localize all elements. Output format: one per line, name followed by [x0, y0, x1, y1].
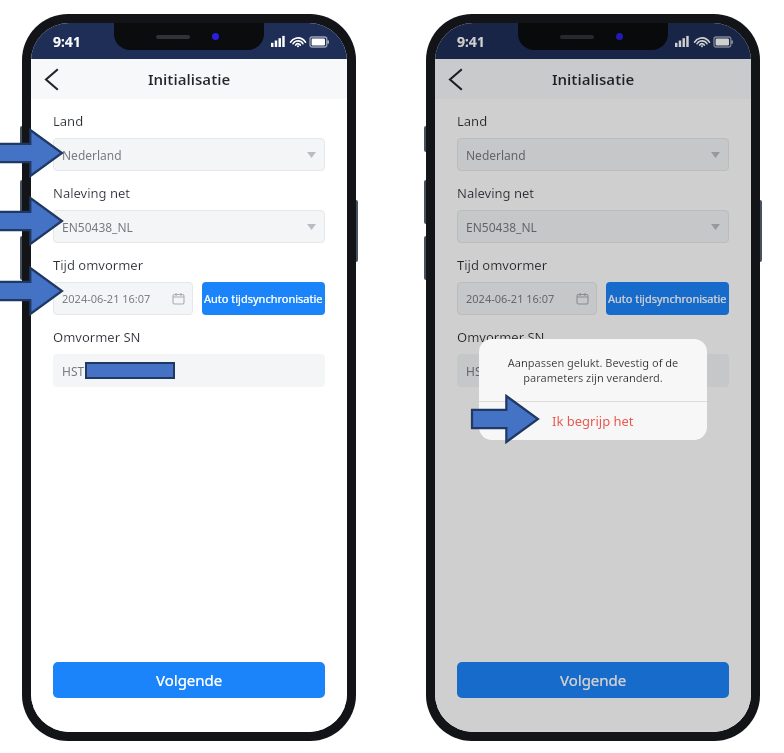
staticText: Nederland	[466, 147, 526, 163]
staticText: HST	[466, 363, 489, 379]
staticText: Volgende	[560, 670, 627, 690]
staticText: EN50438_NL	[466, 219, 537, 235]
button[interactable]: 2024-06-21 16:07	[457, 282, 597, 315]
button[interactable]: Nederland	[457, 138, 729, 171]
staticText: Omvormer SN	[53, 328, 141, 346]
staticText: Tijd omvormer	[457, 256, 548, 274]
staticText: Initialisatie	[552, 69, 635, 89]
staticText: Aanpassen gelukt. Bevestig of de paramet…	[495, 355, 691, 385]
staticText: Initialisatie	[148, 69, 231, 89]
staticText: Land	[53, 112, 84, 130]
button[interactable]: Back	[31, 59, 71, 99]
staticText: 2024-06-21 16:07	[466, 291, 555, 306]
staticText: 9:41	[53, 32, 81, 51]
button[interactable]: Ik begrijp het	[479, 402, 707, 440]
staticText: Land	[457, 112, 488, 130]
staticText: 2024-06-21 16:07	[62, 291, 151, 306]
button[interactable]: EN50438_NL	[53, 210, 325, 243]
staticText: Volgende	[156, 670, 223, 690]
button[interactable]: Volgende	[457, 662, 729, 698]
staticText: EN50438_NL	[62, 219, 133, 235]
staticText: Tijd omvormer	[53, 256, 144, 274]
staticText: Omvormer SN	[457, 328, 545, 346]
button[interactable]: Volgende	[53, 662, 325, 698]
staticText: Naleving net	[457, 184, 535, 202]
staticText: Naleving net	[53, 184, 131, 202]
staticText: HST	[62, 363, 85, 379]
button[interactable]: Auto tijdsynchronisatie	[606, 282, 729, 315]
staticText: Auto tijdsynchronisatie	[204, 291, 323, 306]
button[interactable]: EN50438_NL	[457, 210, 729, 243]
button[interactable]: HST	[53, 354, 325, 387]
staticText: Nederland	[62, 147, 122, 163]
staticText: Auto tijdsynchronisatie	[608, 291, 727, 306]
button[interactable]: Nederland	[53, 138, 325, 171]
button[interactable]: HST	[457, 354, 729, 387]
staticText: Ik begrijp het	[552, 412, 634, 430]
button[interactable]: Auto tijdsynchronisatie	[202, 282, 325, 315]
button[interactable]: 2024-06-21 16:07	[53, 282, 193, 315]
staticText: 9:41	[457, 32, 485, 51]
button[interactable]: Back	[435, 59, 475, 99]
